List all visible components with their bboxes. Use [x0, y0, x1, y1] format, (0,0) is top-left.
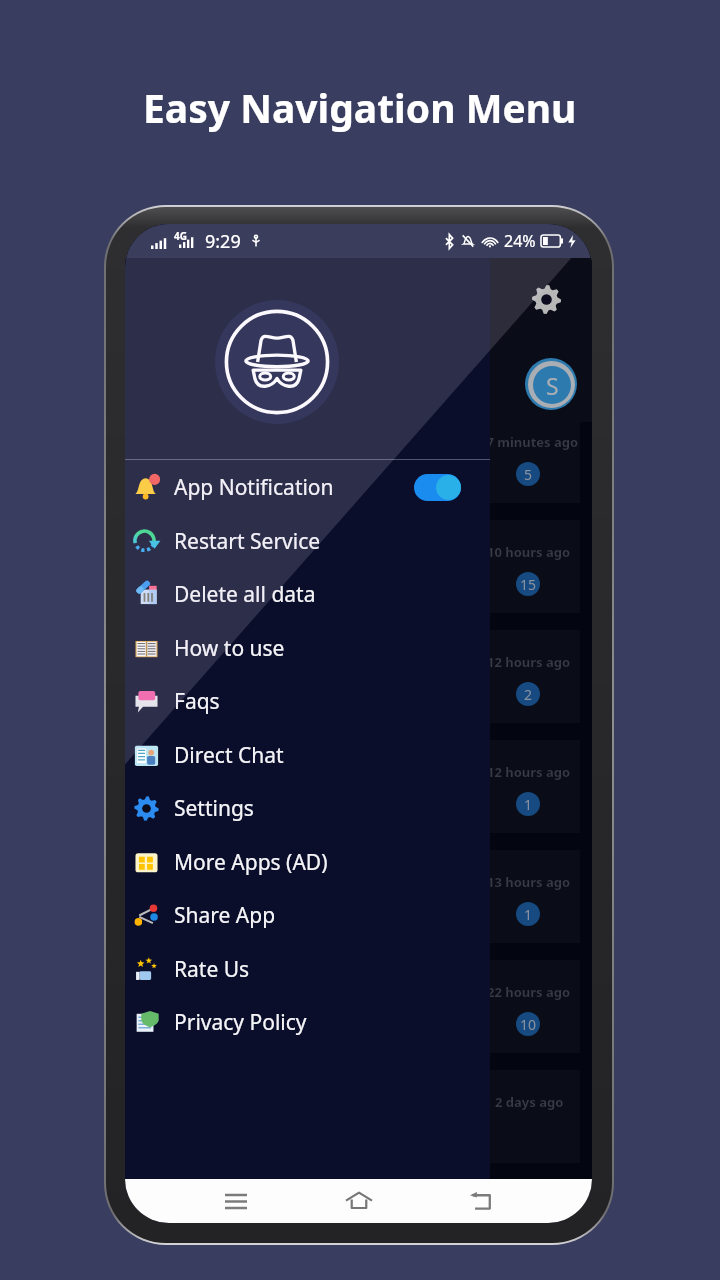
button[interactable]: 10 hours ago [478, 520, 580, 613]
button[interactable]: Settings [125, 781, 490, 835]
staticText: App Notification [174, 473, 334, 502]
button[interactable]: Skype profile [525, 358, 577, 410]
staticText: Privacy Policy [174, 1008, 307, 1037]
staticText: 1 [524, 905, 533, 924]
staticText: 22 hours ago [487, 983, 571, 1001]
staticText: 9:29 [205, 229, 241, 254]
button[interactable]: Recent apps [174, 1179, 297, 1223]
button[interactable]: Direct Chat [125, 728, 490, 782]
button[interactable]: 22 hours ago [478, 960, 580, 1053]
button[interactable]: App notification toggle [414, 474, 461, 501]
staticText: Settings [174, 794, 254, 823]
button[interactable]: App Notification [125, 460, 490, 514]
button[interactable]: Privacy Policy [125, 995, 490, 1049]
button[interactable]: How to use [125, 621, 490, 675]
staticText: 24% [504, 230, 536, 252]
button[interactable]: 12 hours ago [478, 740, 580, 833]
button[interactable]: 12 hours ago [478, 630, 580, 723]
staticText: Direct Chat [174, 741, 284, 770]
button[interactable]: Faqs [125, 674, 490, 728]
staticText: Delete all data [174, 580, 316, 609]
button[interactable]: 13 hours ago [478, 850, 580, 943]
staticText: 2 days ago [495, 1093, 564, 1111]
staticText: 17 minutes ago [479, 433, 579, 451]
button[interactable]: 2 days ago [478, 1070, 580, 1163]
staticText: 2 [524, 685, 533, 704]
staticText: How to use [174, 634, 285, 663]
staticText: Restart Service [174, 527, 321, 556]
button[interactable]: More Apps (AD) [125, 835, 490, 889]
staticText: 13 hours ago [487, 873, 571, 891]
staticText: 15 [520, 575, 537, 594]
staticText: 10 hours ago [487, 543, 571, 561]
button[interactable]: 17 minutes ago [478, 410, 580, 503]
staticText: More Apps (AD) [174, 848, 328, 877]
button[interactable]: Share App [125, 888, 490, 942]
staticText: Easy Navigation Menu [143, 81, 577, 134]
button[interactable]: Home [297, 1179, 420, 1223]
staticText: 12 hours ago [487, 653, 571, 671]
staticText: 1 [524, 795, 533, 814]
staticText: 4G [174, 229, 187, 243]
staticText: 12 hours ago [487, 763, 571, 781]
staticText: Share App [174, 901, 276, 930]
staticText: 5 [524, 465, 533, 484]
button[interactable]: Delete all data [125, 567, 490, 621]
staticText: Faqs [174, 687, 220, 716]
button[interactable]: Rate Us [125, 942, 490, 996]
staticText: Rate Us [174, 955, 250, 984]
button[interactable]: Restart Service [125, 514, 490, 568]
staticText: 10 [520, 1015, 537, 1034]
button[interactable]: Back [420, 1179, 543, 1223]
button[interactable]: Settings [526, 279, 566, 319]
staticText: S [546, 370, 559, 401]
